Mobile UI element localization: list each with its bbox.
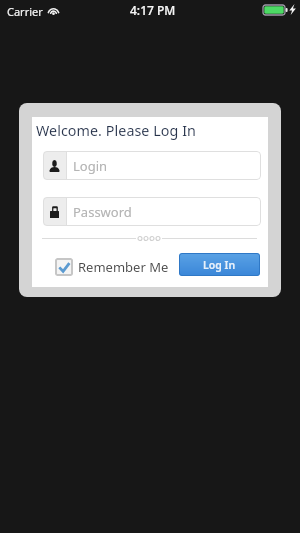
staticText: Welcome. Please Log In [36, 121, 196, 140]
staticText: Login [73, 157, 108, 175]
staticText: Log In [203, 258, 236, 272]
staticText: Password [73, 203, 132, 221]
staticText: Remember Me [78, 258, 169, 276]
button[interactable]: Remember Me [55, 257, 169, 277]
staticText: 4:17 PM [130, 2, 176, 18]
button[interactable]: Login [43, 151, 261, 180]
button[interactable]: Password [43, 197, 261, 226]
staticText: Carrier [7, 4, 43, 19]
button[interactable]: Log In [179, 253, 260, 276]
other: Battery charging [263, 5, 288, 15]
other: Wi-Fi signal [47, 3, 60, 15]
